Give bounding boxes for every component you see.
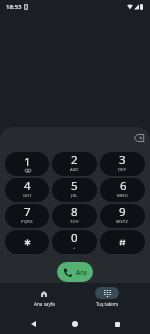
staticText: 7 [24,204,31,220]
staticText: Tuş takımı [96,301,118,307]
button[interactable]: 8 [52,204,97,228]
button[interactable]: 5 [52,178,97,202]
button[interactable]: Recents [110,317,124,331]
button[interactable]: 1 [5,152,49,176]
staticText: Ara [76,268,87,277]
staticText: 5 [71,178,78,194]
button[interactable]: 4 [5,178,49,202]
button[interactable]: 7 [5,204,49,228]
staticText: ABC [70,167,79,173]
staticText: 9 [119,204,126,220]
staticText: + [73,245,76,251]
button[interactable]: Ana sayfa [20,287,68,307]
button[interactable]: Back [26,317,40,331]
staticText: 3 [119,152,126,168]
staticText: 18:53 [6,3,22,11]
staticText: 0 [71,230,78,246]
button[interactable] [5,230,49,254]
staticText: 4 [24,178,31,194]
button[interactable]: 2 [52,152,97,176]
button[interactable]: 6 [100,178,145,202]
staticText: 1 [24,154,31,170]
staticText: PQRS [21,219,33,225]
button[interactable]: 0 [52,230,97,254]
button[interactable]: Tuş takımı [83,287,131,307]
staticText: 6 [120,178,127,194]
staticText: Ana sayfa [34,301,55,307]
staticText: WXYZ [116,219,129,225]
staticText: DEF [118,167,127,173]
button[interactable]: Backspace [132,131,146,145]
button[interactable]: Ara [57,262,93,282]
staticText: MNO [117,193,129,199]
staticText: GHI [23,193,32,199]
button[interactable] [100,230,145,254]
staticText: 8 [71,204,78,220]
staticText: TUV [70,219,79,225]
staticText: JKL [71,193,78,199]
button[interactable]: 3 [100,152,145,176]
staticText: 2 [71,152,78,168]
button[interactable]: Home [68,317,82,331]
button[interactable]: 9 [100,204,145,228]
